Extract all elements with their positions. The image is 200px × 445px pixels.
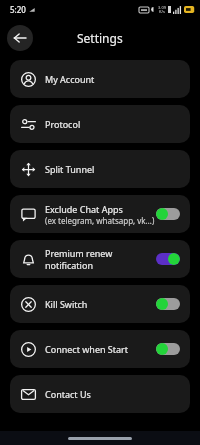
button[interactable]: Kill Switch [10,285,190,323]
staticText: 3.09 K/s [158,5,166,14]
staticText: (ex telegram, whatsapp, vk…) [45,215,155,226]
staticText: Connect when Start [45,343,129,355]
staticText: Protocol [45,118,81,130]
button[interactable]: Toggle [156,343,180,355]
button[interactable]: My Account [10,60,190,98]
button[interactable]: Protocol [10,105,190,143]
button[interactable]: Contact Us [10,375,190,413]
button[interactable]: Toggle [156,253,180,265]
staticText: Exclude Chat Apps [45,203,123,215]
button[interactable]: Toggle [156,208,180,220]
button[interactable]: Exclude Chat Apps [10,195,190,233]
button[interactable]: Back [7,25,33,51]
button[interactable]: Split Tunnel [10,150,190,188]
staticText: 5:20 [10,4,26,15]
staticText: Kill Switch [45,298,88,310]
button[interactable]: Premium renew notification [10,240,190,278]
staticText: Contact Us [45,388,91,400]
button[interactable]: Connect when Start [10,330,190,368]
staticText: Premium renew notification [45,247,156,271]
staticText: Split Tunnel [45,163,95,175]
button[interactable]: Toggle [156,298,180,310]
staticText: Settings [77,30,123,46]
staticText: My Account [45,73,95,85]
